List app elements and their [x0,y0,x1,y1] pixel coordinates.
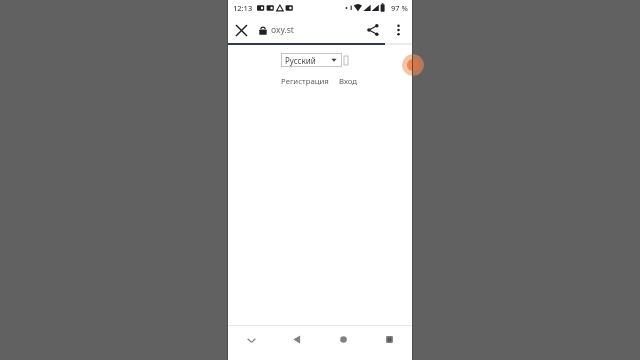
button[interactable]: More options [386,18,410,42]
staticText: Регистрация [281,76,329,87]
button[interactable]: Регистрация [281,76,329,87]
staticText: Русский [285,55,316,66]
button[interactable]: Share [360,17,386,43]
button[interactable]: Back [274,326,320,352]
staticText: Вход [339,76,358,87]
button[interactable]: Recents [366,326,412,352]
button[interactable]: Close [228,17,254,43]
staticText: 12:13 [233,3,253,13]
button[interactable]: Chat [402,54,424,76]
staticText: 97 % [391,3,408,13]
button[interactable]: Русский [281,53,342,67]
staticText: oxy.st [271,24,360,36]
button[interactable]: Hide keyboard [228,326,274,352]
button[interactable]: Вход [339,76,358,87]
button[interactable]: Home [320,326,366,352]
